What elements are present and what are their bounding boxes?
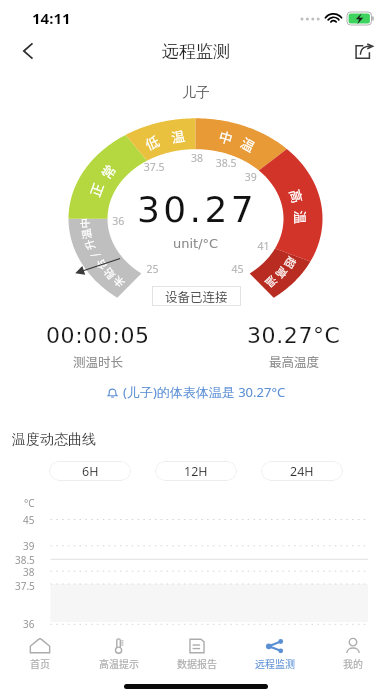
- staticText: 12H: [184, 463, 208, 480]
- staticText: 高温提示: [99, 656, 139, 670]
- button[interactable]: 6H: [49, 461, 131, 481]
- button[interactable]: 首页: [0, 630, 79, 670]
- button[interactable]: Share: [342, 29, 386, 73]
- button[interactable]: 12H: [155, 461, 237, 481]
- staticText: 我的: [343, 656, 363, 670]
- button[interactable]: 我的: [314, 630, 392, 670]
- staticText: 儿子: [0, 84, 392, 102]
- button[interactable]: 高温提示: [79, 630, 158, 670]
- button[interactable]: 远程监测: [236, 630, 314, 670]
- staticText: 设备已连接: [165, 287, 228, 305]
- staticText: unit/°C: [173, 236, 219, 251]
- staticText: 14:11: [32, 8, 71, 28]
- staticText: 00:00:05: [46, 323, 150, 349]
- button[interactable]: 设备已连接: [152, 286, 241, 306]
- staticText: (儿子)的体表体温是 30.27°C: [123, 383, 286, 401]
- button[interactable]: 24H: [261, 461, 343, 481]
- staticText: 温度动态曲线: [12, 431, 96, 449]
- staticText: 数据报告: [177, 656, 217, 670]
- staticText: 30.27: [137, 189, 258, 231]
- staticText: 测温时长: [73, 352, 124, 370]
- staticText: 24H: [290, 463, 314, 480]
- staticText: 30.27°C: [247, 323, 341, 349]
- staticText: 首页: [30, 656, 50, 670]
- button[interactable]: Back: [6, 29, 50, 73]
- staticText: 最高温度: [269, 352, 320, 370]
- staticText: 远程监测: [162, 41, 230, 62]
- staticText: 6H: [82, 463, 99, 480]
- button[interactable]: 数据报告: [158, 630, 236, 670]
- staticText: 远程监测: [255, 656, 295, 670]
